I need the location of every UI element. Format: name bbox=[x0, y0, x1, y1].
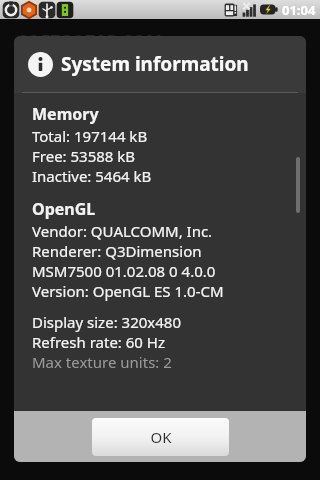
staticText: Inactive: 5464 kB bbox=[32, 166, 152, 186]
staticText: Memory bbox=[32, 103, 99, 125]
staticText: 2. Dimension bbox=[18, 125, 117, 147]
staticText: System information bbox=[61, 51, 249, 77]
staticText: Total: 197144 kB bbox=[32, 126, 148, 146]
staticText: Max texture units: 2 bbox=[32, 352, 172, 372]
staticText: SOFTGOZAR.COM bbox=[18, 30, 162, 53]
staticText: Exit bbox=[18, 192, 46, 214]
staticText: OK bbox=[150, 427, 172, 447]
staticText: MSM7500 01.02.08 0 4.0.0 bbox=[32, 261, 216, 281]
staticText: Refresh rate: 60 Hz bbox=[32, 332, 165, 352]
staticText: Free: 53588 kB bbox=[32, 146, 136, 166]
staticText: custom benchmark bbox=[18, 63, 164, 85]
button[interactable]: OK bbox=[92, 418, 229, 456]
staticText: Version: OpenGL ES 1.0-CM bbox=[32, 281, 224, 301]
staticText: OpenGL bbox=[32, 198, 96, 220]
staticText: Renderer: Q3Dimension bbox=[32, 241, 202, 261]
staticText: 01:04 bbox=[282, 1, 316, 19]
staticText: Vendor: QUALCOMM, Inc. bbox=[32, 221, 213, 241]
staticText: Display size: 320x480 bbox=[32, 312, 181, 332]
